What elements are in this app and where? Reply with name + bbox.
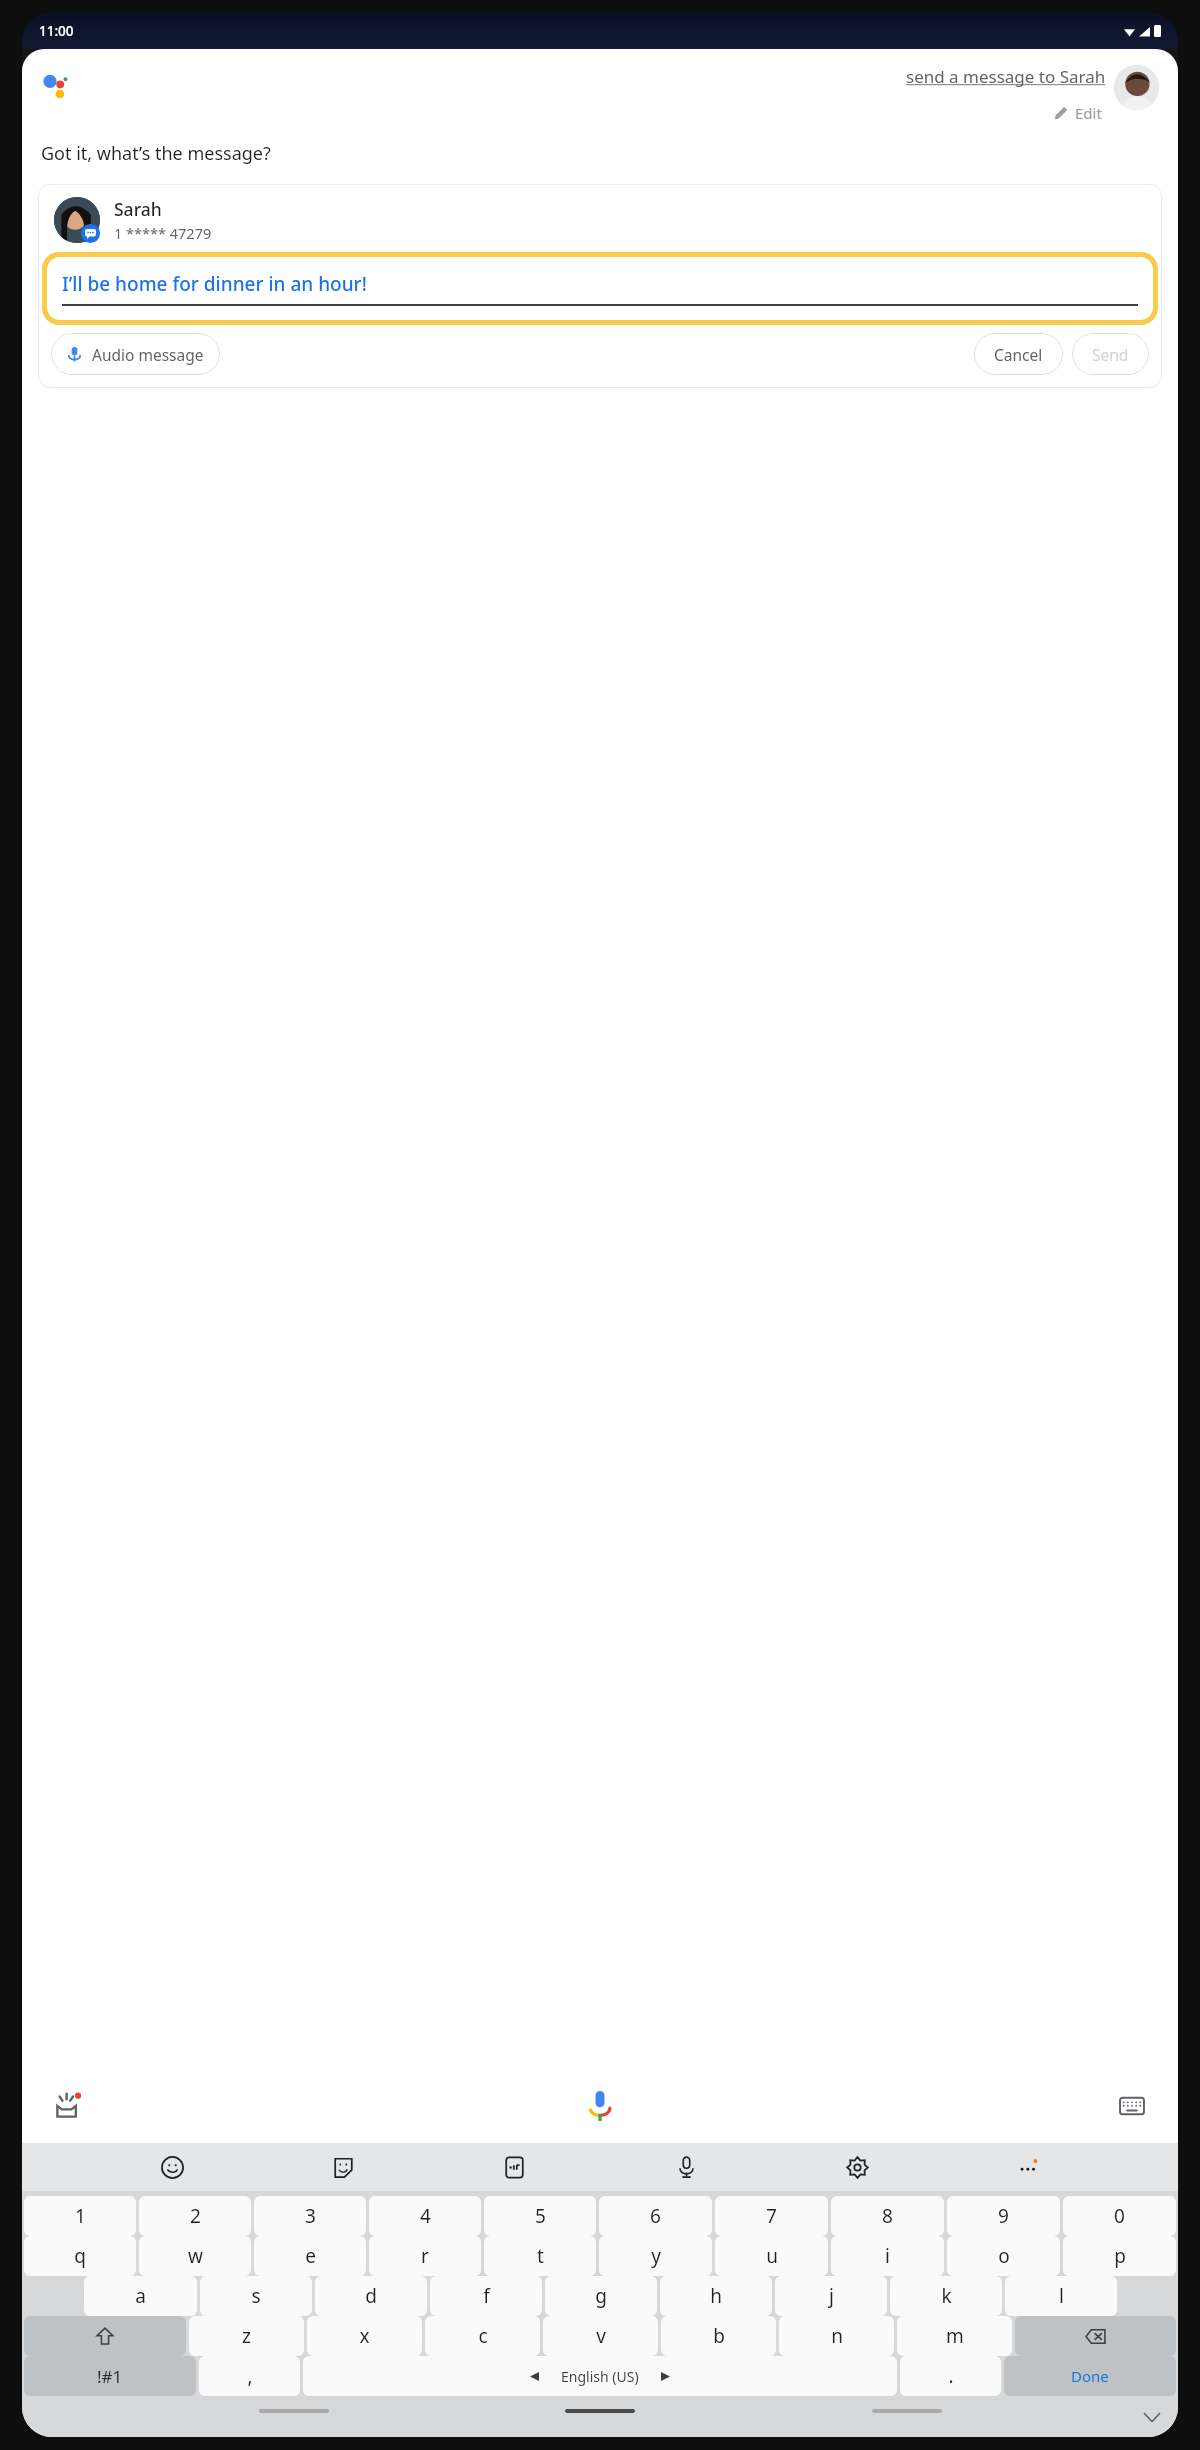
button[interactable]: g — [545, 2276, 657, 2316]
button[interactable]: Space, English (US) — [303, 2356, 897, 2396]
staticText: 0 — [1114, 2203, 1125, 2229]
staticText: c — [478, 2323, 488, 2349]
button[interactable]: j — [775, 2276, 887, 2316]
button[interactable]: . — [900, 2356, 1001, 2396]
staticText: Sarah — [114, 197, 162, 221]
staticText: 5 — [535, 2203, 546, 2229]
staticText: Done — [1071, 2366, 1109, 2386]
staticText: s — [251, 2283, 261, 2309]
button[interactable]: n — [779, 2316, 894, 2356]
staticText: d — [365, 2283, 377, 2309]
button[interactable]: Voice typing — [665, 2146, 707, 2188]
button[interactable]: b — [661, 2316, 776, 2356]
staticText: Got it, what’s the message? — [41, 141, 271, 166]
button[interactable]: Settings — [836, 2146, 878, 2188]
button[interactable]: !#1 — [24, 2356, 196, 2396]
button[interactable]: Hide keyboard — [1144, 2409, 1160, 2425]
button[interactable]: 7 — [715, 2196, 828, 2236]
button[interactable]: Backspace — [1015, 2316, 1176, 2356]
button[interactable]: d — [315, 2276, 427, 2316]
button[interactable]: 5 — [484, 2196, 596, 2236]
button[interactable]: t — [484, 2236, 596, 2276]
staticText: k — [941, 2283, 952, 2309]
staticText: a — [135, 2283, 146, 2309]
button[interactable]: h — [660, 2276, 772, 2316]
button[interactable]: z — [189, 2316, 304, 2356]
staticText: w — [188, 2243, 203, 2269]
staticText: Cancel — [994, 344, 1043, 365]
button[interactable]: 4 — [369, 2196, 481, 2236]
staticText: q — [74, 2243, 86, 2269]
button[interactable]: Keyboard — [1112, 2086, 1152, 2126]
button[interactable]: u — [715, 2236, 828, 2276]
button[interactable]: , — [199, 2356, 300, 2396]
button[interactable]: v — [543, 2316, 658, 2356]
staticText: English (US) — [561, 2367, 639, 2386]
staticText: h — [710, 2283, 722, 2309]
button[interactable]: e — [254, 2236, 366, 2276]
button[interactable]: Send — [1072, 333, 1149, 375]
button[interactable]: m — [897, 2316, 1012, 2356]
staticText: I’ll be home for dinner in an hour! — [62, 271, 367, 297]
button[interactable]: r — [369, 2236, 481, 2276]
button[interactable]: y — [599, 2236, 712, 2276]
button[interactable]: Stickers — [322, 2146, 364, 2188]
button[interactable]: Cancel — [974, 333, 1063, 375]
staticText: y — [651, 2243, 661, 2269]
button[interactable]: Home — [565, 2409, 635, 2413]
staticText: b — [713, 2323, 725, 2349]
button[interactable]: k — [890, 2276, 1002, 2316]
staticText: z — [242, 2323, 251, 2349]
staticText: t — [537, 2243, 544, 2269]
staticText: 6 — [650, 2203, 661, 2229]
button[interactable]: p — [1063, 2236, 1176, 2276]
staticText: m — [946, 2323, 964, 2349]
button[interactable]: 8 — [831, 2196, 944, 2236]
button[interactable]: GIF — [493, 2146, 535, 2188]
button[interactable]: w — [139, 2236, 251, 2276]
staticText: i — [885, 2243, 890, 2269]
button[interactable]: x — [307, 2316, 422, 2356]
staticText: l — [1059, 2283, 1064, 2309]
button[interactable]: Audio message — [51, 333, 220, 375]
button[interactable]: 9 — [947, 2196, 1060, 2236]
button[interactable]: 2 — [139, 2196, 251, 2236]
button[interactable]: q — [24, 2236, 136, 2276]
button[interactable]: Explore — [48, 2086, 88, 2126]
staticText: g — [595, 2283, 607, 2309]
staticText: o — [998, 2243, 1010, 2269]
staticText: x — [359, 2323, 370, 2349]
button[interactable]: Voice input — [576, 2082, 624, 2130]
button[interactable]: f — [430, 2276, 542, 2316]
button[interactable]: Shift — [24, 2316, 186, 2356]
button[interactable]: i — [831, 2236, 944, 2276]
button[interactable]: 6 — [599, 2196, 712, 2236]
button[interactable]: Done — [1004, 2356, 1176, 2396]
button[interactable]: s — [200, 2276, 312, 2316]
staticText: Edit — [1075, 103, 1102, 123]
staticText: Send — [1092, 344, 1129, 365]
button[interactable]: l — [1005, 2276, 1117, 2316]
staticText: f — [483, 2283, 490, 2309]
button[interactable]: Account — [1114, 65, 1159, 110]
staticText: . — [948, 2363, 954, 2389]
staticText: u — [766, 2243, 778, 2269]
staticText: 2 — [190, 2203, 201, 2229]
staticText: , — [247, 2363, 253, 2389]
staticText: j — [829, 2283, 834, 2309]
button[interactable]: I’ll be home for dinner in an hour! — [47, 257, 1153, 320]
button[interactable]: More options — [1007, 2146, 1049, 2188]
button[interactable]: Back — [259, 2409, 329, 2413]
staticText: 4 — [420, 2203, 431, 2229]
button[interactable]: Edit — [1050, 99, 1106, 127]
button[interactable]: Emoji — [151, 2146, 193, 2188]
button[interactable]: c — [425, 2316, 540, 2356]
button[interactable]: a — [84, 2276, 197, 2316]
button[interactable]: 1 — [24, 2196, 136, 2236]
button[interactable]: 0 — [1063, 2196, 1176, 2236]
button[interactable]: Recents — [872, 2409, 942, 2413]
button[interactable]: send a message to Sarah — [906, 65, 1106, 88]
staticText: 8 — [882, 2203, 893, 2229]
button[interactable]: o — [947, 2236, 1060, 2276]
button[interactable]: 3 — [254, 2196, 366, 2236]
